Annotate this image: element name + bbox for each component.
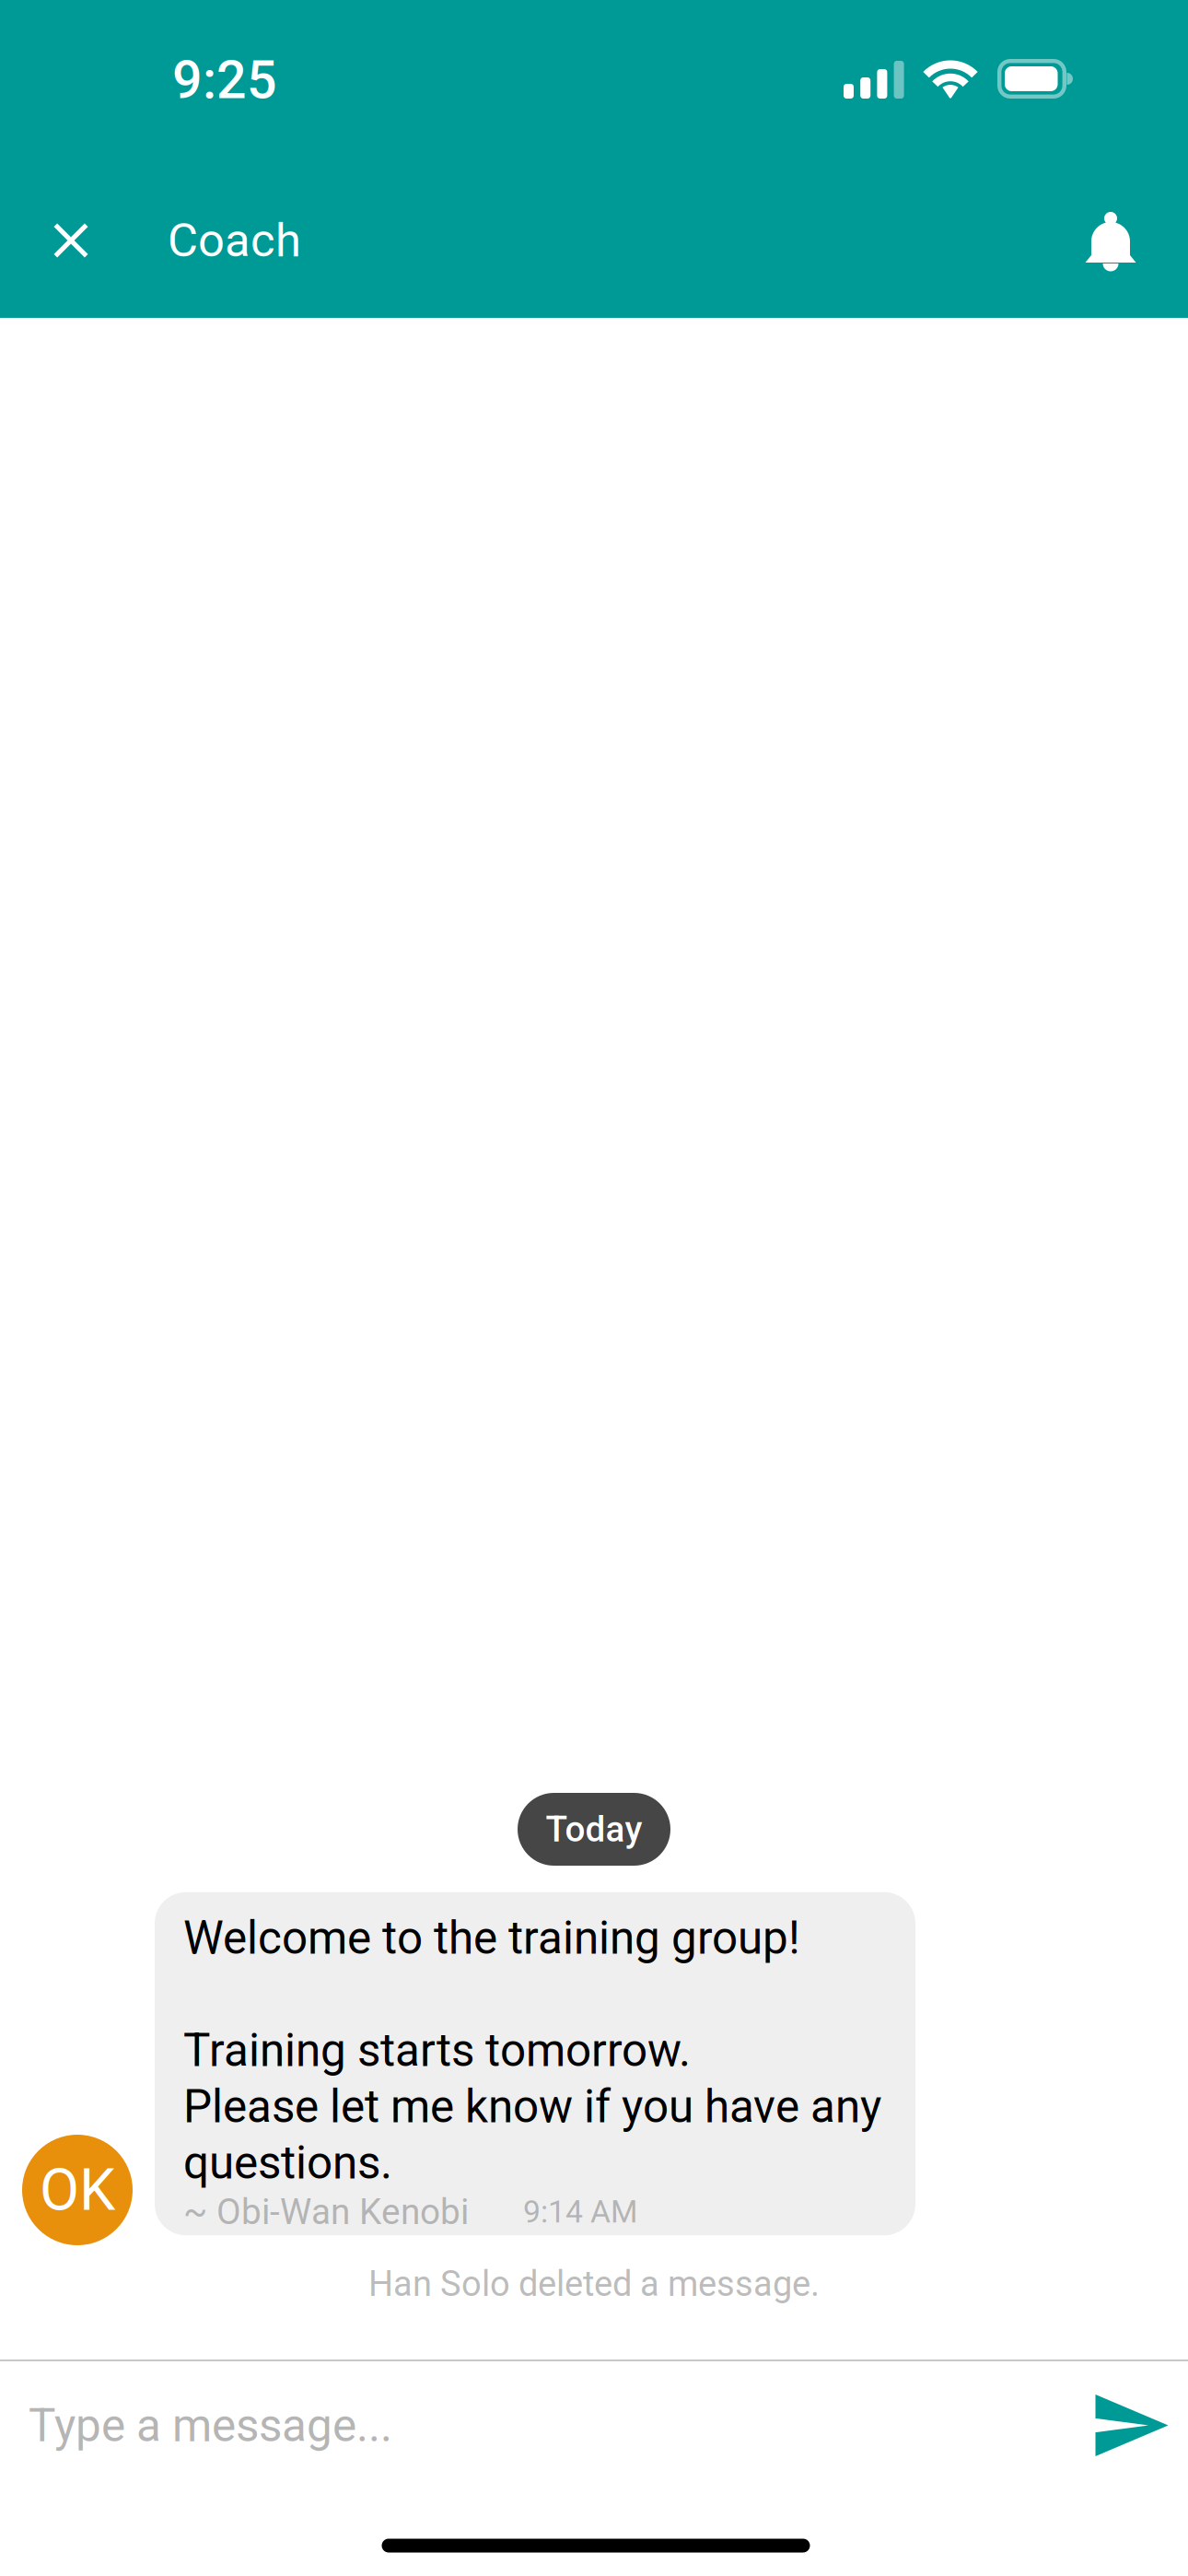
staticText: Coach: [168, 213, 301, 268]
button[interactable]: Close: [20, 193, 122, 288]
staticText: Today: [546, 1808, 642, 1850]
staticText: questions.: [183, 2136, 392, 2190]
staticText: ~ Obi-Wan Kenobi: [183, 2191, 469, 2233]
button[interactable]: Coach: [168, 193, 352, 288]
staticText: 9:14 AM: [523, 2194, 637, 2230]
staticText: Welcome to the training group!: [183, 1912, 800, 1965]
staticText: Please let me know if you have any: [183, 2080, 881, 2133]
staticText: Training starts tomorrow.: [183, 2024, 691, 2077]
staticText: Type a message...: [29, 2399, 392, 2452]
button[interactable]: Notifications: [1063, 193, 1159, 289]
staticText: OK: [40, 2156, 115, 2224]
staticText: 9:25: [172, 49, 277, 111]
staticText: Han Solo deleted a message.: [368, 2263, 820, 2304]
button[interactable]: Type a message...: [0, 2364, 1050, 2488]
button[interactable]: Send: [1077, 2370, 1187, 2481]
button[interactable]: Today: [518, 1793, 670, 1866]
